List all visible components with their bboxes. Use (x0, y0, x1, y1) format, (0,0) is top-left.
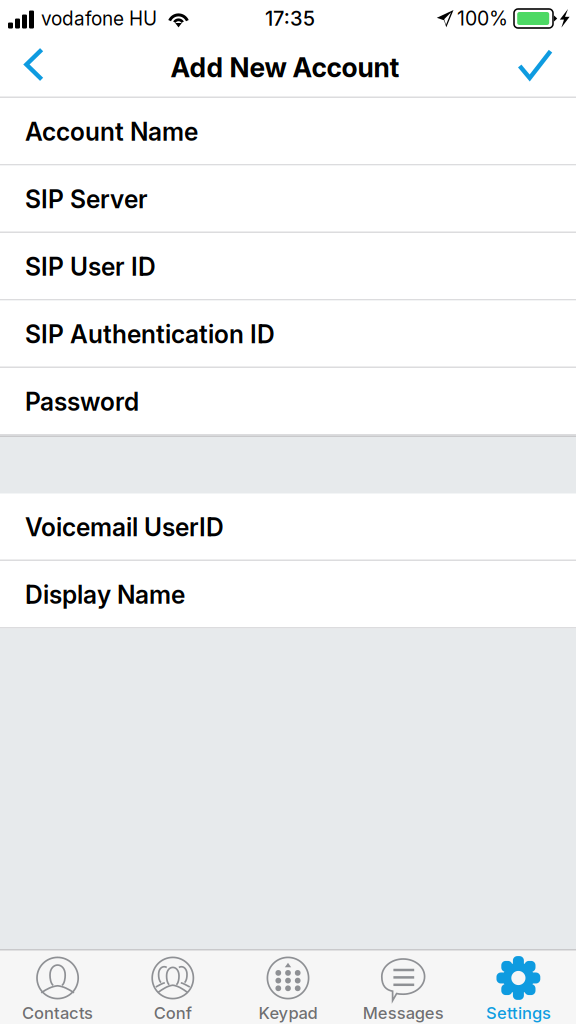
staticText: Messages (363, 1003, 444, 1023)
button[interactable]: SIP Server (0, 165, 576, 233)
button[interactable]: SIP Authentication ID (0, 300, 576, 368)
staticText: Settings (486, 1003, 551, 1023)
staticText: SIP User ID (25, 252, 156, 282)
button[interactable]: Account Name (0, 98, 576, 165)
staticText: SIP Server (25, 184, 148, 214)
staticText: Contacts (22, 1003, 93, 1023)
staticText: Password (25, 387, 139, 417)
button[interactable]: Settings (461, 949, 576, 1024)
button[interactable]: Keypad (230, 949, 346, 1024)
button[interactable]: Back (8, 37, 60, 98)
button[interactable]: Conf (115, 949, 230, 1024)
staticText: Account Name (25, 117, 198, 147)
button[interactable]: Messages (346, 949, 461, 1024)
staticText: Add New Account (170, 51, 399, 84)
button[interactable]: SIP User ID (0, 233, 576, 300)
button[interactable]: Voicemail UserID (0, 493, 576, 561)
button[interactable]: Save (509, 37, 561, 98)
staticText: Display Name (25, 580, 185, 610)
button[interactable]: Contacts (0, 949, 115, 1024)
staticText: 17:35 (265, 6, 315, 31)
button[interactable]: Password (0, 368, 576, 435)
button[interactable]: Display Name (0, 561, 576, 628)
staticText: Voicemail UserID (25, 512, 224, 542)
staticText: 100% (457, 7, 508, 30)
staticText: SIP Authentication ID (25, 319, 275, 349)
staticText: Keypad (258, 1003, 317, 1023)
staticText: vodafone HU (41, 7, 157, 30)
staticText: Conf (154, 1003, 192, 1023)
